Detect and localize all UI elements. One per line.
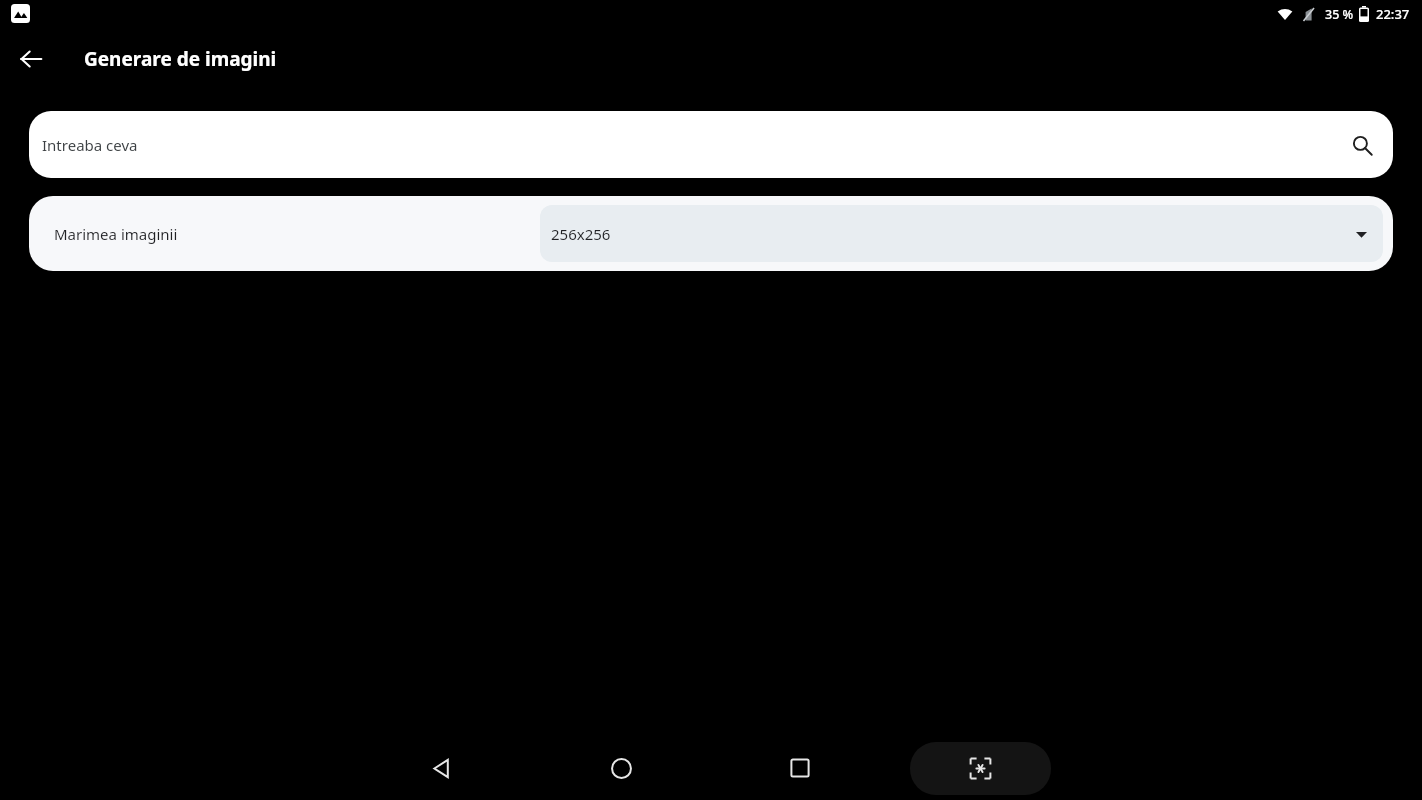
button[interactable]: Intreaba ceva [29,111,1393,178]
button[interactable]: Scan [910,742,1051,795]
button[interactable]: Home [585,740,657,796]
staticText: 22:37 [1376,5,1410,23]
button[interactable]: 256x256 [540,205,1383,262]
staticText: Intreaba ceva [42,135,138,155]
button[interactable]: Back [9,37,53,81]
staticText: 256x256 [551,224,611,244]
staticText: 35 % [1325,6,1354,23]
button[interactable]: Marimea imaginii [29,196,1393,271]
staticText: Generare de imagini [84,46,277,72]
button[interactable]: Search [1346,129,1378,161]
button[interactable]: Back [405,740,477,796]
button[interactable]: Open dropdown [1348,221,1374,247]
staticText: Marimea imaginii [54,224,178,244]
button[interactable]: Recent apps [764,740,836,796]
